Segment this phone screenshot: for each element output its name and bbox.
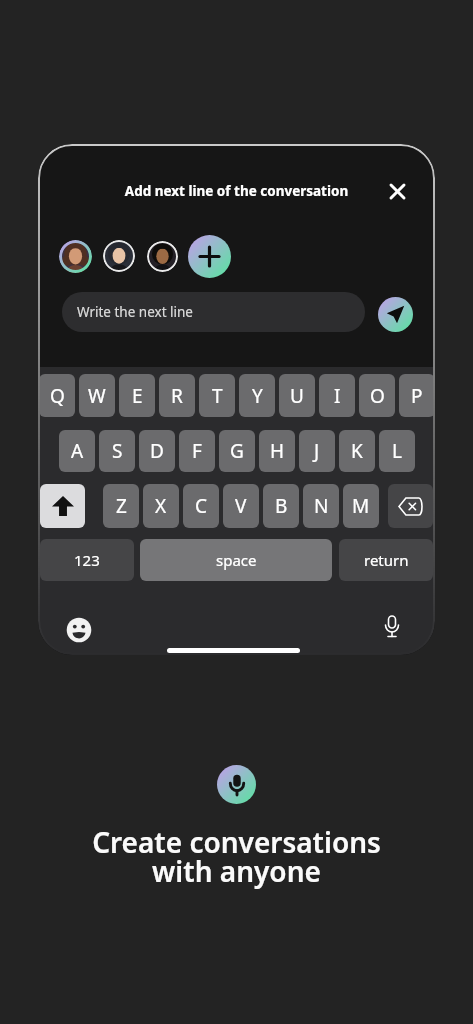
staticText: B [275,493,288,519]
button[interactable]: V [223,484,259,528]
button[interactable]: O [359,374,395,417]
staticText: G [230,438,244,464]
staticText: O [370,383,385,409]
button[interactable]: Z [103,484,139,528]
staticText: L [392,438,402,464]
button[interactable] [388,484,433,528]
button[interactable] [66,617,92,643]
button[interactable]: Write the next line [62,292,365,332]
button[interactable]: J [299,430,335,472]
button[interactable]: M [343,484,379,528]
staticText: R [171,383,183,409]
button[interactable]: return [339,539,433,581]
staticText: D [150,438,164,464]
button[interactable] [188,235,231,278]
button[interactable]: B [263,484,299,528]
staticText: A [71,438,84,464]
staticText: T [212,383,223,409]
staticText: I [334,383,341,409]
button[interactable]: A [59,430,95,472]
button[interactable]: T [199,374,235,417]
button[interactable] [40,484,85,528]
staticText: E [132,383,143,409]
staticText: Add next line of the conversation [38,182,435,200]
staticText: P [411,383,423,409]
button[interactable]: I [319,374,355,417]
staticText: H [270,438,285,464]
button[interactable]: X [143,484,179,528]
staticText: Create conversations with anyone [0,823,473,890]
button[interactable]: R [159,374,195,417]
staticText: Write the next line [77,303,193,321]
button[interactable] [382,176,412,206]
staticText: F [192,438,202,464]
staticText: K [351,438,363,464]
button[interactable]: E [119,374,155,417]
button[interactable] [217,765,256,804]
button[interactable] [382,615,402,641]
staticText: U [290,383,304,409]
staticText: V [235,493,247,519]
button[interactable]: Y [239,374,275,417]
button[interactable]: Q [39,374,75,417]
button[interactable]: L [379,430,415,472]
button[interactable] [378,297,413,332]
button[interactable]: K [339,430,375,472]
staticText: S [112,438,123,464]
button[interactable]: D [139,430,175,472]
staticText: J [314,438,320,464]
button[interactable]: W [79,374,115,417]
staticText: N [314,493,329,519]
staticText: space [216,550,257,570]
button[interactable]: S [99,430,135,472]
button[interactable]: 123 [40,539,134,581]
staticText: Z [116,493,127,519]
button[interactable]: G [219,430,255,472]
button[interactable]: C [183,484,219,528]
staticText: Q [50,383,65,409]
staticText: C [195,493,208,519]
button[interactable]: H [259,430,295,472]
staticText: 123 [74,550,100,570]
button[interactable]: N [303,484,339,528]
staticText: return [364,550,409,570]
button[interactable]: F [179,430,215,472]
staticText: X [155,493,167,519]
button[interactable]: P [399,374,435,417]
staticText: W [88,383,106,409]
staticText: Y [252,383,263,409]
button[interactable]: space [140,539,332,581]
staticText: M [352,493,370,519]
button[interactable]: U [279,374,315,417]
